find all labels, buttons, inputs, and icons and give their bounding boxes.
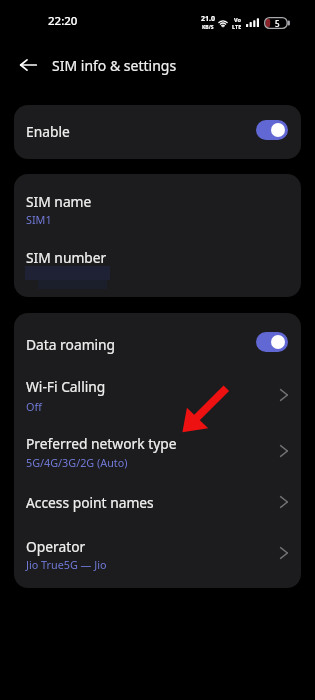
staticText: Operator <box>26 537 86 556</box>
staticText: 5 <box>275 18 280 29</box>
staticText: Preferred network type <box>26 434 177 453</box>
staticText: Vo <box>234 16 241 23</box>
staticText: 22:20 <box>48 13 78 29</box>
staticText: SIM1 <box>26 212 52 227</box>
staticText: 21.0 <box>201 14 215 24</box>
staticText: SIM name <box>26 192 92 211</box>
button[interactable]: Preferred network type <box>14 430 301 484</box>
staticText: Wi-Fi Calling <box>26 377 106 396</box>
button[interactable]: Enable <box>14 105 301 159</box>
button[interactable]: SIM number <box>14 234 301 297</box>
staticText: Jio True5G — Jio <box>26 557 107 572</box>
staticText: KB/S <box>202 24 214 31</box>
button[interactable]: Wi-Fi Calling <box>14 377 301 430</box>
staticText: Off <box>26 399 42 414</box>
staticText: Enable <box>26 122 70 141</box>
button[interactable]: Data roaming <box>14 313 301 377</box>
staticText: 5G/4G/3G/2G (Auto) <box>26 455 128 470</box>
staticText: Access point names <box>26 493 154 512</box>
staticText: SIM number <box>26 248 107 267</box>
staticText: SIM info & settings <box>52 56 177 75</box>
button[interactable]: SIM name <box>14 174 301 234</box>
staticText: Data roaming <box>26 335 116 354</box>
staticText: LTE <box>232 23 242 30</box>
button[interactable]: Back <box>5 42 52 88</box>
button[interactable]: Access point names <box>14 484 301 524</box>
button[interactable]: Toggle <box>256 120 288 140</box>
button[interactable]: Toggle <box>256 332 288 352</box>
button[interactable]: Operator <box>14 524 301 588</box>
